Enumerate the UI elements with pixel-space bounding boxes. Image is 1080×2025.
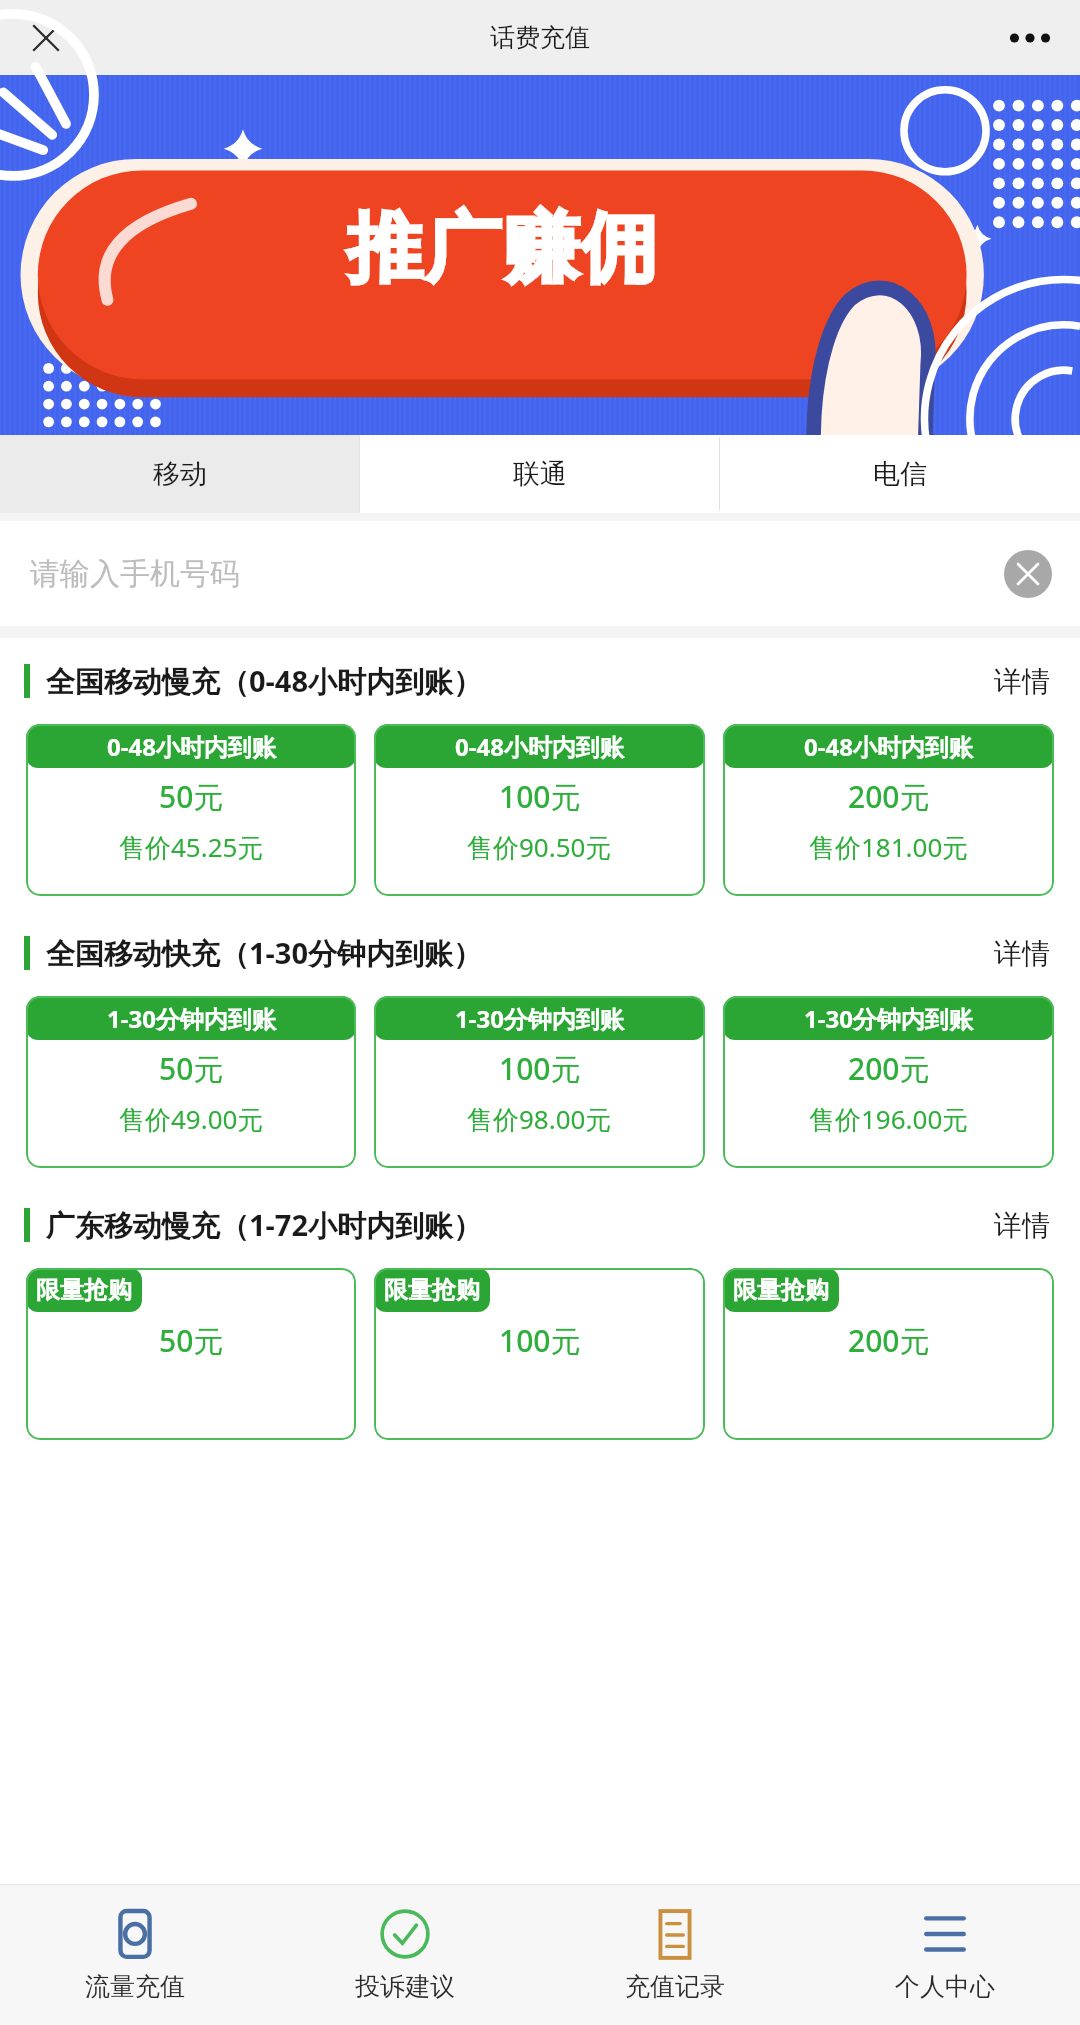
button[interactable]: 电信 <box>720 435 1080 513</box>
staticText: 50元 <box>159 1048 224 1089</box>
staticText: 1-30分钟内到账 <box>455 1002 624 1035</box>
button[interactable]: 0-48小时内到账 <box>374 724 705 896</box>
staticText: 全国移动慢充（0-48小时内到账） <box>46 661 994 701</box>
button[interactable]: 限量抢购 <box>374 1268 705 1440</box>
staticText: 100元 <box>499 1320 581 1361</box>
button[interactable]: 请输入手机号码 <box>0 521 1080 626</box>
staticText: 限量抢购 <box>36 1275 132 1305</box>
button[interactable]: 限量抢购 <box>723 1268 1054 1440</box>
staticText: 详情 <box>994 936 1050 971</box>
button[interactable]: 1-30分钟内到账 <box>374 996 705 1168</box>
staticText: 200元 <box>848 1320 930 1361</box>
staticText: 全国移动快充（1-30分钟内到账） <box>46 933 994 973</box>
button[interactable]: 联通 <box>360 435 720 513</box>
staticText: 0-48小时内到账 <box>455 730 624 763</box>
button[interactable]: Close <box>18 10 74 66</box>
staticText: 联通 <box>513 457 567 491</box>
staticText: 售价181.00元 <box>809 829 969 865</box>
staticText: 限量抢购 <box>384 1275 480 1305</box>
staticText: 详情 <box>994 664 1050 699</box>
staticText: 广东移动慢充（1-72小时内到账） <box>46 1205 994 1245</box>
button[interactable]: 广东移动慢充（1-72小时内到账） <box>0 1182 1080 1268</box>
staticText: 投诉建议 <box>355 1971 455 2002</box>
button[interactable]: 全国移动慢充（0-48小时内到账） <box>0 638 1080 724</box>
button[interactable]: 限量抢购 <box>26 1268 356 1440</box>
button[interactable]: More options <box>1000 8 1060 68</box>
button[interactable]: 1-30分钟内到账 <box>723 996 1054 1168</box>
staticText: 售价49.00元 <box>119 1101 264 1137</box>
staticText: 0-48小时内到账 <box>107 730 276 763</box>
staticText: 售价98.00元 <box>467 1101 612 1137</box>
staticText: 电信 <box>873 457 927 491</box>
staticText: 200元 <box>848 1048 930 1089</box>
button[interactable]: 0-48小时内到账 <box>723 724 1054 896</box>
staticText: 售价196.00元 <box>809 1101 969 1137</box>
staticText: 充值记录 <box>625 1971 725 2002</box>
staticText: 1-30分钟内到账 <box>804 1002 973 1035</box>
staticText: 100元 <box>499 776 581 817</box>
staticText: 流量充值 <box>85 1971 185 2002</box>
button[interactable]: 个人中心 <box>810 1885 1080 2025</box>
staticText: 推广赚佣 <box>346 201 658 297</box>
staticText: 限量抢购 <box>733 1275 829 1305</box>
staticText: 售价90.50元 <box>467 829 612 865</box>
staticText: 话费充值 <box>490 22 590 53</box>
button[interactable]: Clear <box>1004 550 1052 598</box>
staticText: 移动 <box>153 457 207 491</box>
staticText: 详情 <box>994 1208 1050 1243</box>
button[interactable]: 全国移动快充（1-30分钟内到账） <box>0 910 1080 996</box>
staticText: 200元 <box>848 776 930 817</box>
button[interactable]: 投诉建议 <box>270 1885 540 2025</box>
button[interactable]: 0-48小时内到账 <box>26 724 356 896</box>
staticText: 个人中心 <box>895 1971 995 2002</box>
staticText: 0-48小时内到账 <box>804 730 973 763</box>
staticText: 50元 <box>159 776 224 817</box>
staticText: 请输入手机号码 <box>30 555 240 593</box>
button[interactable]: 流量充值 <box>0 1885 270 2025</box>
button[interactable]: 1-30分钟内到账 <box>26 996 356 1168</box>
staticText: 100元 <box>499 1048 581 1089</box>
staticText: 50元 <box>159 1320 224 1361</box>
button[interactable]: 移动 <box>0 435 360 513</box>
staticText: 1-30分钟内到账 <box>107 1002 276 1035</box>
staticText: 售价45.25元 <box>119 829 264 865</box>
button[interactable]: 充值记录 <box>540 1885 810 2025</box>
